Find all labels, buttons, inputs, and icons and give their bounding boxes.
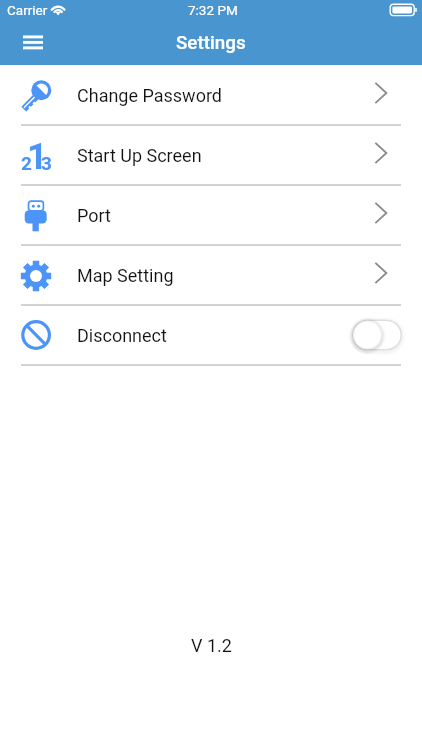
button[interactable]: Map Setting: [0, 245, 422, 305]
staticText: 7:32 PM: [188, 2, 238, 18]
button[interactable]: 2: [0, 125, 422, 185]
button[interactable]: Port: [0, 185, 422, 245]
staticText: Change Password: [77, 85, 222, 106]
staticText: 1: [27, 136, 48, 178]
staticText: Map Setting: [77, 265, 174, 286]
staticText: Carrier: [7, 2, 48, 18]
staticText: Disconnect: [77, 325, 167, 346]
button[interactable]: Open navigation menu: [11, 25, 55, 59]
button[interactable]: Disconnect switch, off: [348, 315, 408, 355]
staticText: Port: [77, 205, 111, 226]
staticText: 2: [21, 152, 32, 174]
button[interactable]: Disconnect: [0, 305, 422, 365]
staticText: 3: [41, 152, 52, 174]
staticText: Start Up Screen: [77, 145, 202, 166]
button[interactable]: Change Password: [0, 65, 422, 125]
staticText: V 1.2: [191, 635, 232, 656]
staticText: Settings: [176, 32, 246, 54]
